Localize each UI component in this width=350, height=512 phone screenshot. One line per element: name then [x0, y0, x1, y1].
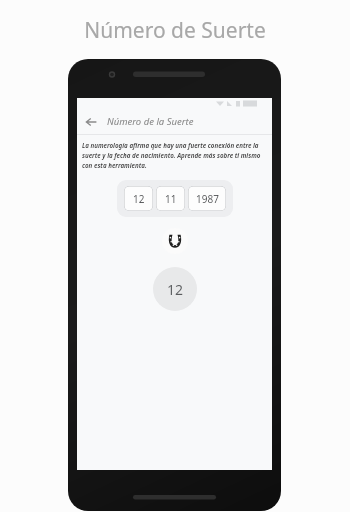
staticText: 12 [167, 280, 184, 299]
staticText: La numerología afirma que hay una fuerte… [82, 141, 268, 170]
button[interactable]: Back [81, 112, 101, 132]
button[interactable]: 11 [156, 186, 185, 211]
button[interactable]: 12 [124, 186, 153, 211]
button[interactable]: 12 [153, 267, 197, 311]
staticText: Número de la Suerte [107, 115, 194, 128]
button[interactable]: Calcular número de la suerte [162, 228, 188, 254]
staticText: 11 [165, 192, 177, 206]
button[interactable]: 1987 [188, 186, 226, 211]
staticText: 1987 [196, 192, 219, 206]
staticText: Número de Suerte [84, 16, 266, 45]
staticText: 12 [133, 192, 145, 206]
